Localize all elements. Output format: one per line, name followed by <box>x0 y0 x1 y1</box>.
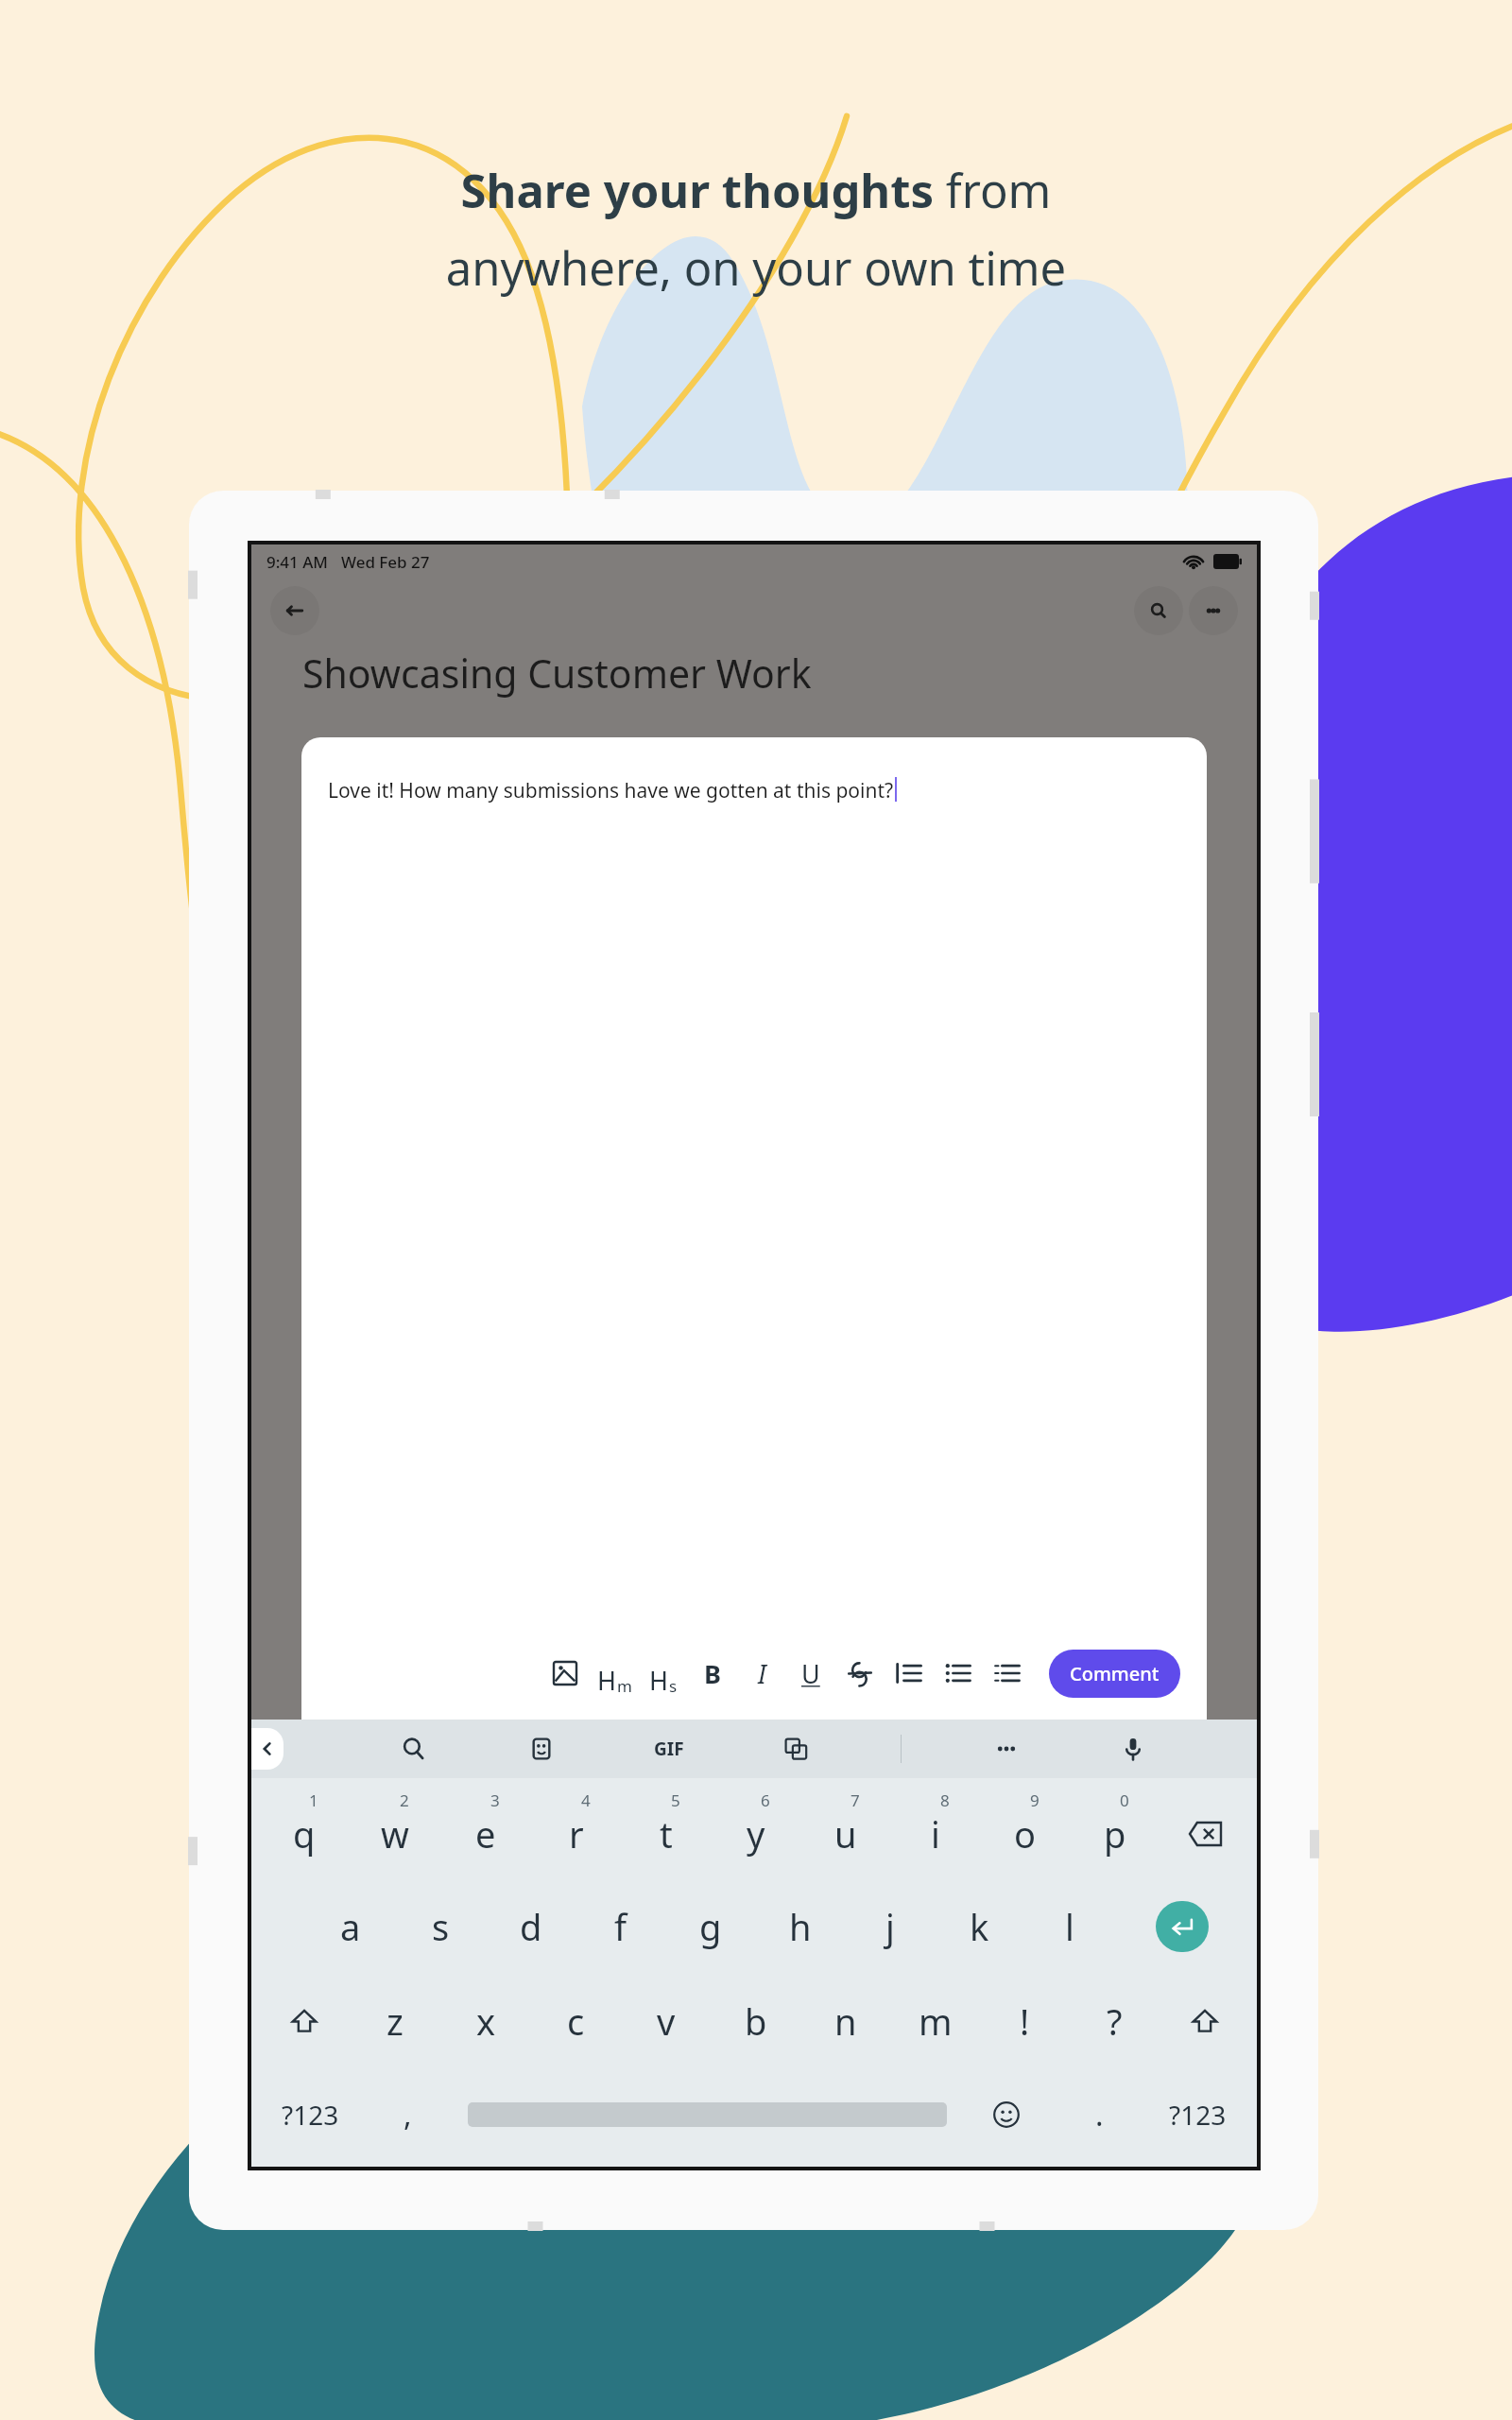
button[interactable]: j <box>845 1879 935 1974</box>
button[interactable]: d <box>486 1879 576 1974</box>
staticText: d <box>520 1902 542 1951</box>
button[interactable]: Insert image <box>541 1649 590 1698</box>
staticText: GIF <box>654 1737 684 1761</box>
button[interactable]: a <box>305 1879 396 1974</box>
button[interactable]: 1 <box>259 1778 350 1879</box>
staticText: n <box>834 1996 857 2046</box>
button[interactable]: , <box>361 2068 455 2161</box>
button[interactable]: Bold <box>688 1649 737 1698</box>
button[interactable]: k <box>935 1879 1024 1974</box>
button[interactable]: Search <box>1134 586 1183 635</box>
button[interactable]: 2 <box>350 1778 440 1879</box>
staticText: p <box>1104 1809 1126 1858</box>
button[interactable]: ?123 <box>1146 2068 1249 2161</box>
staticText: I <box>758 1656 766 1691</box>
staticText: u <box>834 1809 857 1858</box>
button[interactable]: f <box>576 1879 665 1974</box>
button[interactable]: Backspace <box>1160 1778 1249 1879</box>
button[interactable]: n <box>800 1974 890 2068</box>
button[interactable]: Underline <box>786 1649 835 1698</box>
button[interactable]: 7 <box>800 1778 890 1879</box>
button[interactable]: Comment <box>1049 1650 1180 1698</box>
button[interactable]: Back <box>270 586 319 635</box>
button[interactable]: ?123 <box>259 2068 361 2161</box>
button[interactable]: Medium heading <box>590 1649 639 1698</box>
staticText: Comment <box>1070 1661 1160 1686</box>
staticText: f <box>614 1902 627 1951</box>
button[interactable]: Stickers <box>520 1727 563 1771</box>
staticText: 3 <box>490 1789 500 1811</box>
staticText: Love it! How many submissions have we go… <box>328 777 894 804</box>
button[interactable]: Collapse toolbar <box>251 1728 283 1770</box>
staticText: H <box>597 1663 617 1698</box>
staticText: l <box>1065 1902 1074 1951</box>
staticText: ?123 <box>1169 2097 1227 2133</box>
button[interactable]: Small heading <box>639 1649 688 1698</box>
button[interactable]: z <box>350 1974 440 2068</box>
staticText: a <box>340 1902 361 1951</box>
button[interactable]: ? <box>1070 1974 1160 2068</box>
button[interactable]: 0 <box>1070 1778 1160 1879</box>
button[interactable]: Bulleted list <box>934 1649 983 1698</box>
staticText: m <box>919 1996 953 2046</box>
button[interactable]: Voice input <box>1111 1727 1155 1771</box>
button[interactable]: Space <box>455 2068 959 2161</box>
staticText: Showcasing Customer Work <box>302 647 812 700</box>
button[interactable]: More options <box>1189 586 1238 635</box>
button[interactable]: c <box>531 1974 621 2068</box>
staticText: o <box>1014 1809 1036 1858</box>
staticText: ! <box>1020 1996 1030 2046</box>
button[interactable]: More <box>985 1727 1028 1771</box>
staticText: j <box>885 1902 895 1951</box>
staticText: 6 <box>761 1789 770 1811</box>
button[interactable]: . <box>1053 2068 1146 2161</box>
button[interactable]: h <box>755 1879 845 1974</box>
button[interactable]: 6 <box>711 1778 800 1879</box>
staticText: . <box>1095 2094 1104 2135</box>
button[interactable]: 9 <box>980 1778 1070 1879</box>
button[interactable]: Emoji <box>959 2068 1053 2161</box>
button[interactable]: Numbered list <box>983 1649 1032 1698</box>
staticText: e <box>475 1809 496 1858</box>
button[interactable]: s <box>396 1879 486 1974</box>
button[interactable]: 4 <box>531 1778 621 1879</box>
staticText: x <box>476 1996 496 2046</box>
button[interactable]: x <box>440 1974 531 2068</box>
staticText: 8 <box>940 1789 950 1811</box>
staticText: H <box>649 1663 669 1698</box>
button[interactable]: Translate <box>774 1727 817 1771</box>
staticText: 9:41 AM <box>266 551 328 573</box>
staticText: q <box>293 1809 316 1858</box>
button[interactable]: 3 <box>440 1778 531 1879</box>
button[interactable]: ! <box>980 1974 1070 2068</box>
staticText: 9 <box>1030 1789 1039 1811</box>
button[interactable]: Italic <box>737 1649 786 1698</box>
button[interactable]: Shift <box>259 1974 350 2068</box>
button[interactable]: 5 <box>621 1778 711 1879</box>
button[interactable]: GIF <box>647 1730 691 1768</box>
button[interactable]: Enter <box>1114 1879 1249 1974</box>
staticText: g <box>699 1902 722 1951</box>
staticText: y <box>747 1809 765 1858</box>
staticText: U <box>801 1656 820 1691</box>
staticText: ?123 <box>282 2097 339 2133</box>
staticText: z <box>387 1996 404 2046</box>
staticText: 1 <box>309 1789 318 1811</box>
button[interactable]: Quote <box>885 1649 934 1698</box>
button[interactable]: Shift <box>1160 1974 1249 2068</box>
staticText: t <box>660 1809 673 1858</box>
staticText: r <box>569 1809 584 1858</box>
staticText: 4 <box>581 1789 591 1811</box>
button[interactable]: l <box>1024 1879 1114 1974</box>
button[interactable]: Search <box>392 1727 436 1771</box>
staticText: v <box>657 1996 676 2046</box>
button[interactable]: m <box>890 1974 980 2068</box>
staticText: Share your thoughts from anywhere, on yo… <box>113 159 1399 300</box>
button[interactable]: g <box>665 1879 755 1974</box>
button[interactable]: b <box>711 1974 800 2068</box>
button[interactable]: Strikethrough <box>835 1649 885 1698</box>
staticText: s <box>432 1902 450 1951</box>
staticText: i <box>931 1809 940 1858</box>
button[interactable]: v <box>621 1974 711 2068</box>
button[interactable]: 8 <box>890 1778 980 1879</box>
